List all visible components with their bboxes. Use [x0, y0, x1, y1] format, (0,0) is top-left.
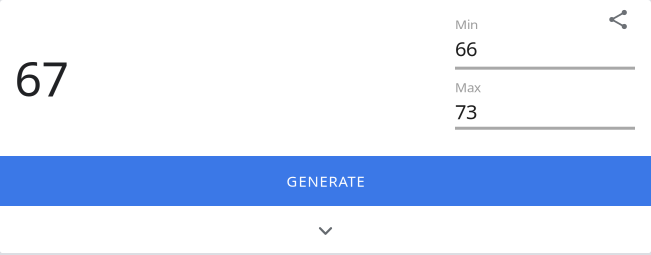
button[interactable]: GENERATE	[0, 156, 651, 206]
button[interactable]: Share	[601, 2, 635, 36]
staticText: GENERATE	[286, 171, 364, 191]
staticText: Max	[455, 78, 481, 96]
staticText: 73	[455, 98, 477, 125]
staticText: 67	[14, 46, 68, 110]
staticText: Min	[455, 15, 478, 33]
button[interactable]: Min	[455, 15, 635, 70]
button[interactable]: Max	[455, 78, 635, 130]
button[interactable]: Show history	[0, 206, 651, 253]
staticText: 66	[455, 35, 477, 62]
